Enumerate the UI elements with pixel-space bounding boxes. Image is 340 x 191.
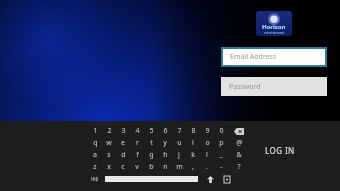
staticText: z <box>93 162 97 172</box>
staticText: l <box>206 150 208 160</box>
button[interactable]: l <box>200 149 214 161</box>
staticText: s <box>107 150 111 160</box>
button[interactable]: 0 <box>214 125 228 137</box>
button[interactable]: 9 <box>200 125 214 137</box>
staticText: Email Address <box>230 52 277 62</box>
staticText: 4 <box>135 126 140 136</box>
staticText: g <box>149 150 154 160</box>
button[interactable]: q <box>88 137 102 149</box>
staticText: u <box>177 138 182 148</box>
staticText: ? <box>237 162 241 172</box>
button[interactable]: Email Address <box>223 49 325 65</box>
staticText: m <box>176 162 183 172</box>
button[interactable]: 1 <box>88 125 102 137</box>
button[interactable]: m <box>172 161 186 173</box>
staticText: 5 <box>149 126 154 136</box>
staticText: t <box>150 138 153 148</box>
staticText: @ <box>236 138 243 148</box>
staticText: p <box>219 138 224 148</box>
button[interactable]: 4 <box>130 125 144 137</box>
button[interactable]: ? <box>232 161 246 173</box>
button[interactable]: , <box>186 161 200 173</box>
button[interactable]: - <box>214 161 228 173</box>
staticText: 6 <box>163 126 168 136</box>
button[interactable]: 6 <box>158 125 172 137</box>
staticText: f <box>136 150 139 160</box>
staticText: 1 <box>93 126 98 136</box>
button[interactable]: x <box>102 161 116 173</box>
staticText: n <box>163 162 168 172</box>
staticText: o <box>205 138 210 148</box>
staticText: 7 <box>177 126 182 136</box>
staticText: x <box>107 162 111 172</box>
staticText: 2 <box>107 126 112 136</box>
other: Horizon Entertainment logo <box>256 11 292 36</box>
staticText: LOG IN <box>265 145 295 156</box>
staticText: e <box>121 138 125 148</box>
button[interactable]: & <box>232 149 246 161</box>
staticText: d <box>121 150 126 160</box>
button[interactable]: u <box>172 137 186 149</box>
staticText: !#$ <box>91 176 99 183</box>
button[interactable]: s <box>102 149 116 161</box>
staticText: . <box>206 162 208 172</box>
button[interactable]: Keyboard settings <box>220 173 233 185</box>
button[interactable]: Password <box>221 77 327 96</box>
button[interactable]: b <box>144 161 158 173</box>
staticText: 3 <box>121 126 126 136</box>
button[interactable]: e <box>116 137 130 149</box>
button[interactable]: p <box>214 137 228 149</box>
button[interactable]: 3 <box>116 125 130 137</box>
button[interactable]: y <box>158 137 172 149</box>
staticText: k <box>191 150 195 160</box>
button[interactable]: t <box>144 137 158 149</box>
button[interactable]: i <box>186 137 200 149</box>
staticText: Horizon <box>262 23 286 31</box>
button[interactable]: j <box>172 149 186 161</box>
button[interactable]: d <box>116 149 130 161</box>
staticText: y <box>163 138 167 148</box>
staticText: & <box>236 150 242 160</box>
staticText: Password <box>229 82 261 92</box>
button[interactable]: o <box>200 137 214 149</box>
button[interactable]: w <box>102 137 116 149</box>
button[interactable]: k <box>186 149 200 161</box>
button[interactable]: n <box>158 161 172 173</box>
button[interactable]: z <box>88 161 102 173</box>
button[interactable]: . <box>200 161 214 173</box>
button[interactable]: Shift <box>204 173 217 185</box>
staticText: w <box>106 138 112 148</box>
button[interactable]: !#$ <box>88 173 102 185</box>
button[interactable]: 7 <box>172 125 186 137</box>
staticText: h <box>163 150 168 160</box>
staticText: 8 <box>191 126 196 136</box>
staticText: - <box>220 162 223 172</box>
staticText: b <box>149 162 154 172</box>
button[interactable]: 2 <box>102 125 116 137</box>
staticText: entertainment <box>264 31 285 35</box>
button[interactable]: g <box>144 149 158 161</box>
button[interactable]: _ <box>214 149 228 161</box>
button[interactable]: r <box>130 137 144 149</box>
button[interactable]: @ <box>232 137 246 149</box>
staticText: r <box>136 138 139 148</box>
staticText: v <box>135 162 139 172</box>
button[interactable]: 8 <box>186 125 200 137</box>
staticText: c <box>121 162 125 172</box>
button[interactable]: v <box>130 161 144 173</box>
staticText: 9 <box>205 126 210 136</box>
staticText: , <box>192 162 194 172</box>
button[interactable]: LOG IN <box>256 142 304 158</box>
button[interactable]: Backspace <box>232 125 246 137</box>
staticText: 0 <box>219 126 224 136</box>
staticText: j <box>178 150 180 160</box>
staticText: a <box>93 150 97 160</box>
staticText: i <box>192 138 194 148</box>
button[interactable]: 5 <box>144 125 158 137</box>
button[interactable]: h <box>158 149 172 161</box>
button[interactable]: f <box>130 149 144 161</box>
button[interactable]: c <box>116 161 130 173</box>
staticText: _ <box>219 150 223 160</box>
button[interactable]: a <box>88 149 102 161</box>
